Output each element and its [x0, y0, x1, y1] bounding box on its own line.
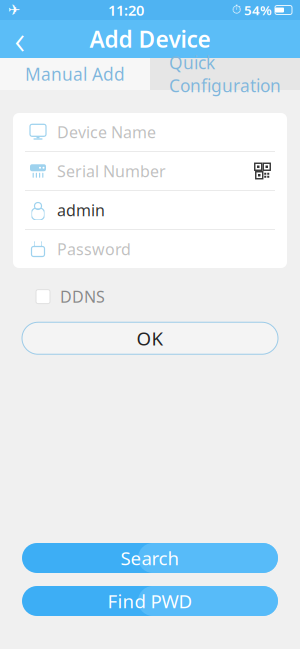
staticText: Search [120, 546, 179, 570]
staticText: ‹ [14, 12, 25, 65]
staticText: ⏱ [232, 4, 241, 16]
staticText: ✈ [8, 2, 20, 18]
staticText: 54% [244, 1, 272, 19]
button[interactable]: DDNS [36, 280, 105, 313]
staticText: Add Device [89, 24, 210, 54]
staticText: Manual Add [25, 62, 125, 85]
staticText: OK [136, 326, 163, 351]
staticText: 11:20 [108, 0, 144, 20]
staticText: admin [57, 199, 105, 221]
button[interactable]: Password [13, 230, 287, 268]
button[interactable]: Quick Configuration [150, 58, 300, 90]
button[interactable]: Search [22, 543, 278, 573]
button[interactable]: Back [0, 20, 40, 58]
button[interactable]: Serial Number [13, 152, 287, 190]
button[interactable]: admin [13, 191, 287, 229]
staticText: DDNS [60, 286, 105, 307]
button[interactable]: Device Name [13, 113, 287, 151]
button[interactable]: Find PWD [22, 586, 278, 616]
staticText: Quick Configuration [169, 51, 281, 97]
staticText: Find PWD [107, 589, 192, 613]
button[interactable]: OK [22, 322, 278, 354]
staticText: Serial Number [57, 160, 166, 182]
staticText: Device Name [57, 121, 156, 143]
staticText: Password [57, 238, 131, 260]
button[interactable]: Manual Add [0, 58, 150, 90]
